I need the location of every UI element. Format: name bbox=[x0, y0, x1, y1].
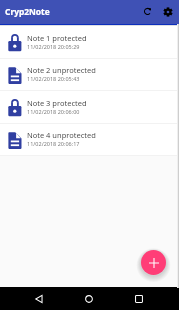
staticText: 11/02/2018 20:05:43 bbox=[27, 75, 80, 82]
button[interactable]: Note 4 unprotected bbox=[0, 123, 179, 156]
button[interactable]: Recents bbox=[127, 287, 150, 310]
button[interactable]: Note 3 protected bbox=[0, 91, 179, 124]
button[interactable]: Settings bbox=[159, 3, 176, 20]
staticText: Note 2 unprotected bbox=[27, 65, 96, 75]
staticText: Note 1 protected bbox=[27, 33, 87, 43]
staticText: 11/02/2018 20:06:00 bbox=[27, 108, 80, 115]
staticText: 11/02/2018 20:05:29 bbox=[27, 43, 80, 50]
staticText: 11/02/2018 20:06:17 bbox=[27, 140, 80, 147]
button[interactable]: Note 2 unprotected bbox=[0, 58, 179, 91]
staticText: Cryp2Note bbox=[5, 6, 50, 17]
staticText: Note 4 unprotected bbox=[27, 130, 96, 140]
button[interactable]: Add note bbox=[141, 250, 166, 275]
button[interactable]: Note 1 protected bbox=[0, 26, 179, 59]
button[interactable]: Home bbox=[77, 287, 100, 310]
button[interactable]: Refresh bbox=[139, 3, 156, 20]
staticText: Note 3 protected bbox=[27, 98, 87, 108]
button[interactable]: Back bbox=[27, 287, 50, 310]
